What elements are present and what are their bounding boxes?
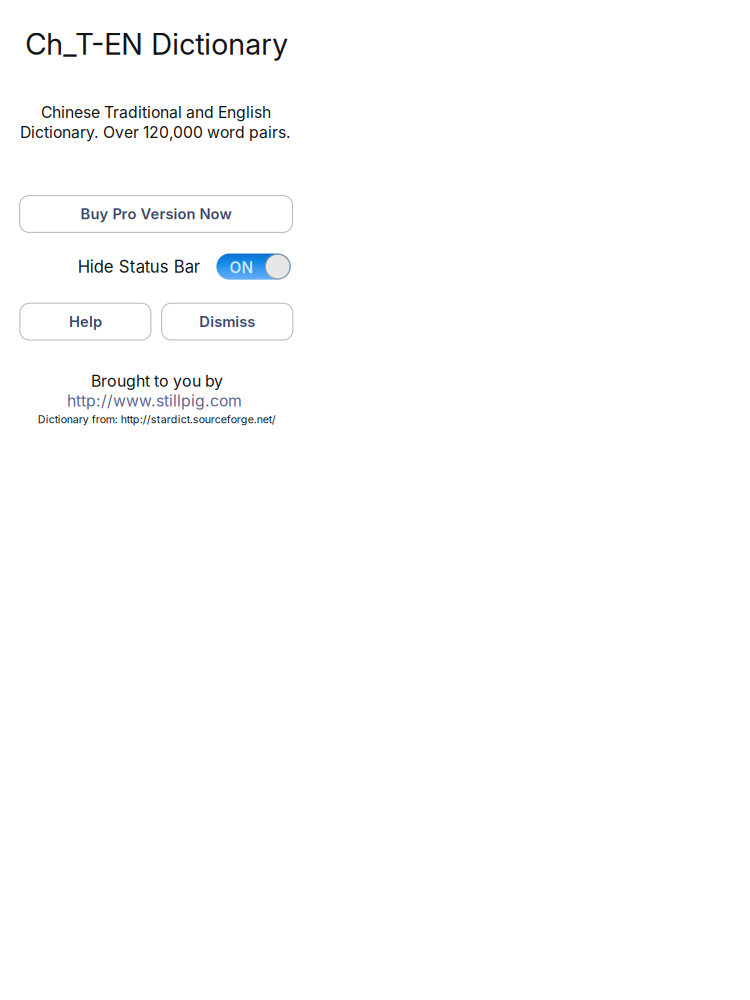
button[interactable]: Buy Pro Version Now (20, 196, 292, 232)
staticText: ON (229, 258, 253, 277)
staticText: Hide Status Bar (78, 256, 200, 277)
button[interactable]: Hide Status Bar (78, 253, 291, 280)
staticText: Ch_T-EN Dictionary (25, 26, 288, 62)
staticText: Dismiss (199, 313, 255, 330)
button[interactable]: Help (20, 303, 151, 340)
staticText: Dictionary from: http://stardict.sourcef… (38, 413, 276, 426)
staticText: http://www.stillpig.com (67, 391, 242, 410)
staticText: Brought to you by (91, 371, 223, 391)
button[interactable]: http://www.stillpig.com (67, 391, 242, 410)
staticText: Dictionary. Over 120,000 word pairs. (20, 123, 291, 142)
staticText: Chinese Traditional and English (41, 103, 271, 122)
staticText: Help (69, 313, 102, 330)
button[interactable]: Dismiss (162, 303, 293, 340)
staticText: Buy Pro Version Now (81, 205, 232, 223)
